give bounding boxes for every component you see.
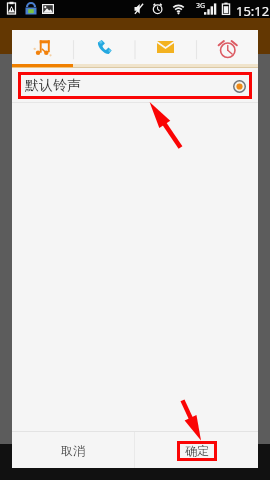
button[interactable]: Message tone tab bbox=[134, 30, 196, 64]
staticText: 15:12 bbox=[236, 2, 270, 20]
staticText: 3G bbox=[196, 1, 206, 11]
button[interactable]: 取消 bbox=[12, 432, 134, 468]
button[interactable]: 默认铃声 bbox=[12, 68, 258, 102]
staticText: 确定 bbox=[185, 443, 209, 458]
button[interactable]: 确定 bbox=[135, 432, 258, 468]
staticText: 取消 bbox=[61, 443, 85, 458]
button[interactable]: Phone ringtone tab bbox=[73, 30, 134, 64]
staticText: 默认铃声 bbox=[25, 77, 81, 95]
button[interactable]: Alarm tone tab bbox=[196, 30, 258, 64]
button[interactable]: Music ringtone tab bbox=[12, 30, 73, 64]
